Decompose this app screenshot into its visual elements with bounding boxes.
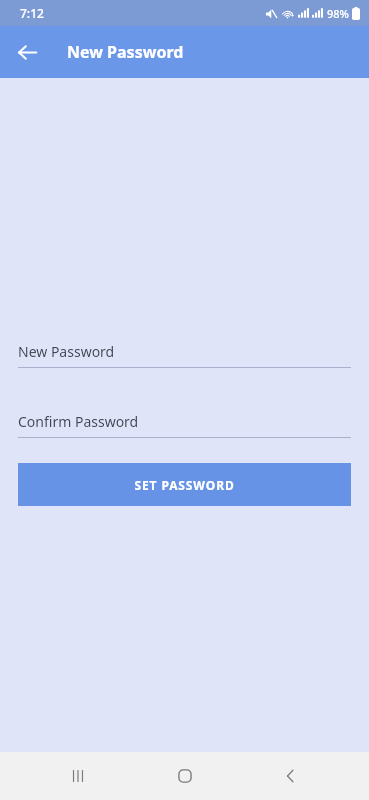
button[interactable]: Back	[7, 32, 47, 72]
button[interactable]: Recent apps	[50, 752, 106, 800]
staticText: New Password	[18, 342, 115, 361]
button[interactable]: New Password	[18, 342, 351, 368]
button[interactable]: SET PASSWORD	[18, 463, 351, 506]
staticText: SET PASSWORD	[134, 477, 235, 493]
button[interactable]: Home	[157, 752, 213, 800]
staticText: 98%	[327, 6, 349, 21]
button[interactable]: Confirm Password	[18, 412, 351, 438]
button[interactable]: Back	[263, 752, 319, 800]
staticText: New Password	[67, 41, 184, 63]
staticText: Confirm Password	[18, 412, 139, 431]
staticText: 7:12	[20, 5, 44, 21]
